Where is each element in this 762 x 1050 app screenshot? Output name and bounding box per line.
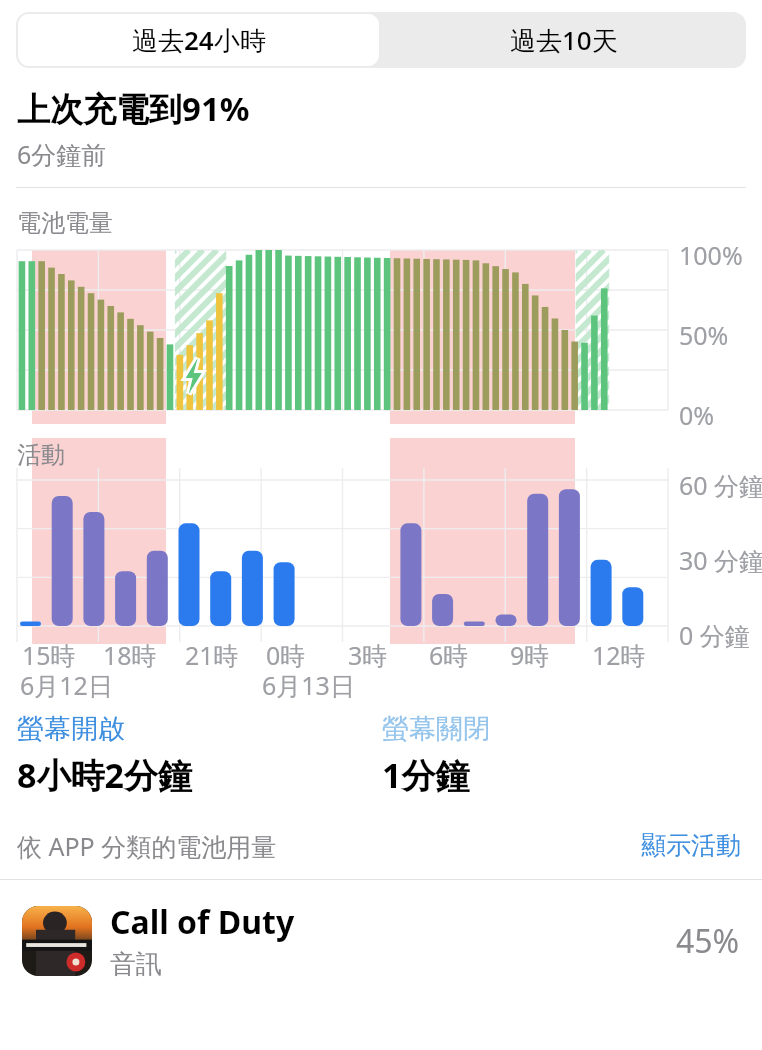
staticText: 50% [679,318,729,352]
button[interactable]: 過去24小時 [18,14,379,66]
staticText: 100% [679,238,743,272]
staticText: 依 APP 分類的電池用量 [17,829,277,863]
staticText: 音訊 [110,948,162,981]
staticText: 過去10天 [510,22,618,58]
staticText: 6月12日 [20,668,113,702]
staticText: 45% [676,919,740,963]
staticText: 螢幕開啟 [17,712,125,746]
staticText: 30 分鐘 [679,543,762,577]
staticText: 0% [679,398,715,432]
staticText: 6時 [429,638,469,672]
staticText: 0時 [266,638,306,672]
staticText: 9時 [510,638,550,672]
staticText: 15時 [22,638,76,672]
staticText: 1分鐘 [382,752,470,798]
button[interactable]: 過去10天 [381,12,746,68]
staticText: 電池電量 [17,208,113,238]
staticText: 過去24小時 [132,22,266,58]
button[interactable]: Call of Duty [0,880,762,981]
staticText: 60 分鐘 [679,468,762,502]
staticText: 螢幕關閉 [382,712,490,746]
staticText: 6月13日 [262,668,355,702]
staticText: 12時 [592,638,646,672]
staticText: 0 分鐘 [679,618,750,652]
staticText: 顯示活動 [641,830,741,861]
staticText: 8小時2分鐘 [17,752,192,798]
staticText: 18時 [103,638,157,672]
button[interactable]: 顯示活動 [637,826,745,865]
staticText: 3時 [348,638,388,672]
staticText: 6分鐘前 [17,137,107,171]
staticText: 活動 [17,440,65,470]
staticText: 上次充電到91% [17,86,250,131]
staticText: Call of Duty [110,900,295,944]
staticText: 21時 [185,638,239,672]
